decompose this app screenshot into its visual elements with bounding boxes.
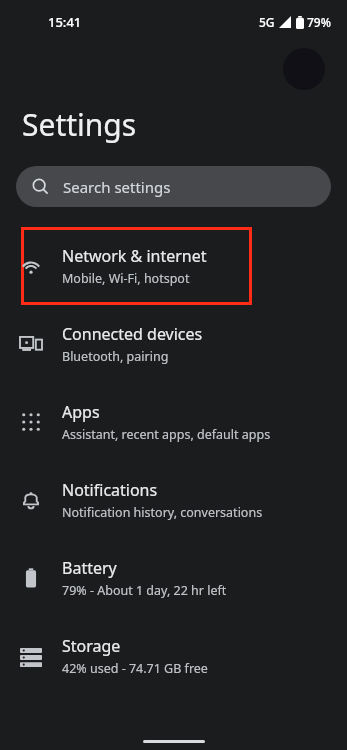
- staticText: 79% - About 1 day, 22 hr left: [62, 582, 227, 599]
- staticText: 5G: [259, 14, 275, 30]
- staticText: Apps: [62, 401, 100, 423]
- staticText: 15:41: [48, 13, 82, 31]
- button[interactable]: Notifications: [0, 461, 347, 539]
- button[interactable]: Account: [283, 48, 325, 90]
- button[interactable]: Connected devices: [0, 305, 347, 383]
- staticText: Bluetooth, pairing: [62, 348, 169, 365]
- staticText: Battery: [62, 557, 117, 579]
- button[interactable]: Storage: [0, 617, 347, 695]
- button[interactable]: Battery: [0, 539, 347, 617]
- button[interactable]: Apps: [0, 383, 347, 461]
- staticText: Network & internet: [62, 245, 207, 267]
- staticText: Search settings: [63, 177, 171, 197]
- staticText: Notifications: [62, 479, 158, 501]
- staticText: Storage: [62, 635, 121, 657]
- staticText: Assistant, recent apps, default apps: [62, 426, 271, 443]
- button[interactable]: Network & internet: [0, 227, 347, 305]
- staticText: 79%: [307, 14, 331, 30]
- staticText: 42% used - 74.71 GB free: [62, 660, 208, 677]
- staticText: Notification history, conversations: [62, 504, 263, 521]
- staticText: Connected devices: [62, 323, 203, 345]
- button[interactable]: Search settings: [16, 166, 331, 207]
- staticText: Mobile, Wi-Fi, hotspot: [62, 270, 190, 287]
- staticText: Settings: [22, 104, 137, 145]
